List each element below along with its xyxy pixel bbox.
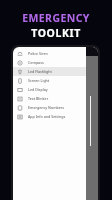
staticText: Compass bbox=[28, 60, 44, 65]
other: Menu icon bbox=[17, 51, 23, 57]
button[interactable]: Menu icon bbox=[13, 112, 98, 121]
other: Menu icon bbox=[17, 60, 23, 66]
staticText: Led Flashlight bbox=[28, 69, 52, 74]
staticText: EMERGENCY bbox=[0, 11, 112, 25]
button[interactable]: Menu icon bbox=[13, 76, 98, 85]
other: Menu icon bbox=[17, 114, 23, 120]
staticText: Screen Light bbox=[28, 78, 50, 83]
button[interactable]: Menu icon bbox=[13, 103, 98, 112]
other: Menu icon bbox=[17, 78, 23, 84]
button[interactable]: Menu icon bbox=[13, 85, 98, 94]
staticText: TOOLKIT bbox=[0, 26, 112, 40]
other: Menu icon bbox=[17, 96, 23, 102]
button[interactable]: Menu icon bbox=[13, 58, 98, 67]
button[interactable]: Menu icon bbox=[13, 49, 98, 58]
staticText: Text Blinker bbox=[28, 96, 49, 101]
staticText: Emergency Numbers bbox=[28, 105, 65, 110]
button[interactable]: Menu icon bbox=[13, 67, 98, 76]
staticText: Led Display bbox=[28, 87, 48, 92]
button[interactable]: Menu icon bbox=[13, 94, 98, 103]
staticText: App Info and Settings bbox=[28, 114, 66, 119]
staticText: Police Siren bbox=[28, 51, 48, 56]
other: Menu icon bbox=[17, 87, 23, 93]
other: Menu icon bbox=[17, 69, 23, 75]
other: Menu icon bbox=[17, 105, 23, 111]
